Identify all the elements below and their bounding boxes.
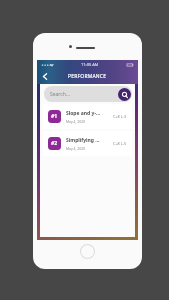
staticText: C+8 L-3 xyxy=(113,114,127,119)
staticText: Search... xyxy=(50,91,70,98)
button[interactable]: Home xyxy=(80,244,95,259)
staticText: May 4, 2020 xyxy=(66,146,86,151)
staticText: C+8 L-5 xyxy=(113,141,127,146)
button[interactable]: #1 xyxy=(43,104,132,129)
staticText: Simplifying ... xyxy=(66,137,100,144)
staticText: #2 xyxy=(51,140,58,147)
button[interactable]: Search xyxy=(118,88,131,101)
staticText: 11:05 AM xyxy=(81,62,99,67)
button[interactable]: Search... xyxy=(44,86,132,102)
button[interactable]: #2 xyxy=(43,131,132,156)
staticText: #1 xyxy=(51,113,58,120)
staticText: May 4, 2020 xyxy=(66,119,86,124)
button[interactable]: Back xyxy=(37,69,52,84)
staticText: PERFORMANCE xyxy=(68,73,107,80)
staticText: Slope and y-... xyxy=(66,110,101,117)
